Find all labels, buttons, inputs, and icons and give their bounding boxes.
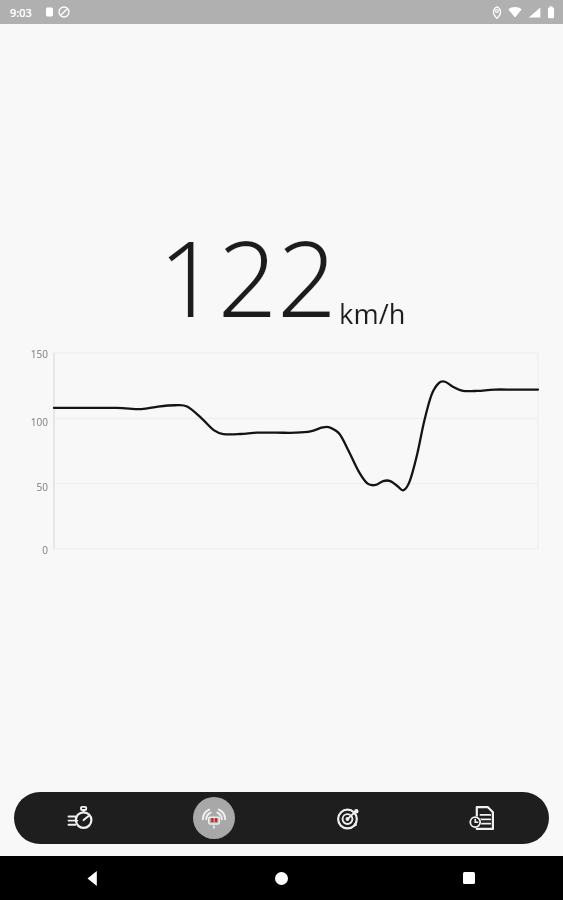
staticText: 50 xyxy=(0,480,48,494)
button[interactable]: History xyxy=(415,792,549,844)
button[interactable]: GPS status xyxy=(281,792,415,844)
button[interactable]: Home xyxy=(187,856,375,900)
staticText: 150 xyxy=(0,347,48,361)
button[interactable]: Speedometer xyxy=(147,792,281,844)
button[interactable]: Recent apps xyxy=(375,856,563,900)
staticText: 100 xyxy=(0,415,48,429)
staticText: 122 xyxy=(158,206,337,348)
staticText: 0 xyxy=(0,543,48,557)
button[interactable]: Back xyxy=(0,856,187,900)
staticText: km/h xyxy=(339,295,406,332)
staticText: 9:03 xyxy=(10,5,32,20)
button[interactable]: Acceleration timer xyxy=(14,792,147,844)
